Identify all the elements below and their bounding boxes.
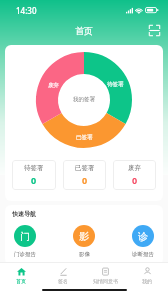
button[interactable]: 首页: [0, 263, 42, 284]
staticText: 影像: [79, 251, 90, 258]
staticText: 待签署: [24, 164, 44, 172]
staticText: 我的签署: [73, 96, 95, 103]
button[interactable]: 门: [14, 225, 36, 258]
staticText: 首页: [16, 278, 26, 284]
staticText: 门: [20, 230, 30, 243]
staticText: 0: [82, 174, 88, 186]
button[interactable]: Scan: [148, 24, 161, 37]
button[interactable]: 我的: [126, 263, 168, 284]
staticText: 签名: [58, 278, 68, 284]
button[interactable]: 废弃: [113, 160, 156, 190]
button[interactable]: 影: [73, 225, 95, 258]
button[interactable]: 已签署: [63, 160, 106, 190]
staticText: 待签署: [107, 81, 124, 88]
staticText: 首页: [75, 25, 93, 36]
staticText: 14:30: [16, 5, 37, 16]
staticText: 知情同意书: [93, 278, 118, 284]
staticText: 诊: [138, 230, 148, 243]
staticText: 我的: [142, 278, 152, 284]
staticText: 诊断报告: [132, 251, 154, 258]
staticText: 快速导航: [12, 210, 36, 218]
staticText: 门诊报告: [14, 251, 36, 258]
button[interactable]: 诊: [132, 225, 154, 258]
staticText: 废弃: [48, 82, 59, 89]
staticText: 已签署: [76, 134, 93, 141]
staticText: 已签署: [75, 164, 95, 172]
staticText: 影: [79, 230, 89, 243]
button[interactable]: 签名: [42, 263, 84, 284]
staticText: 废弃: [128, 164, 141, 172]
staticText: 0: [31, 174, 37, 186]
button[interactable]: 待签署: [12, 160, 56, 190]
button[interactable]: 知情同意书: [84, 263, 126, 284]
staticText: 0: [132, 174, 138, 186]
